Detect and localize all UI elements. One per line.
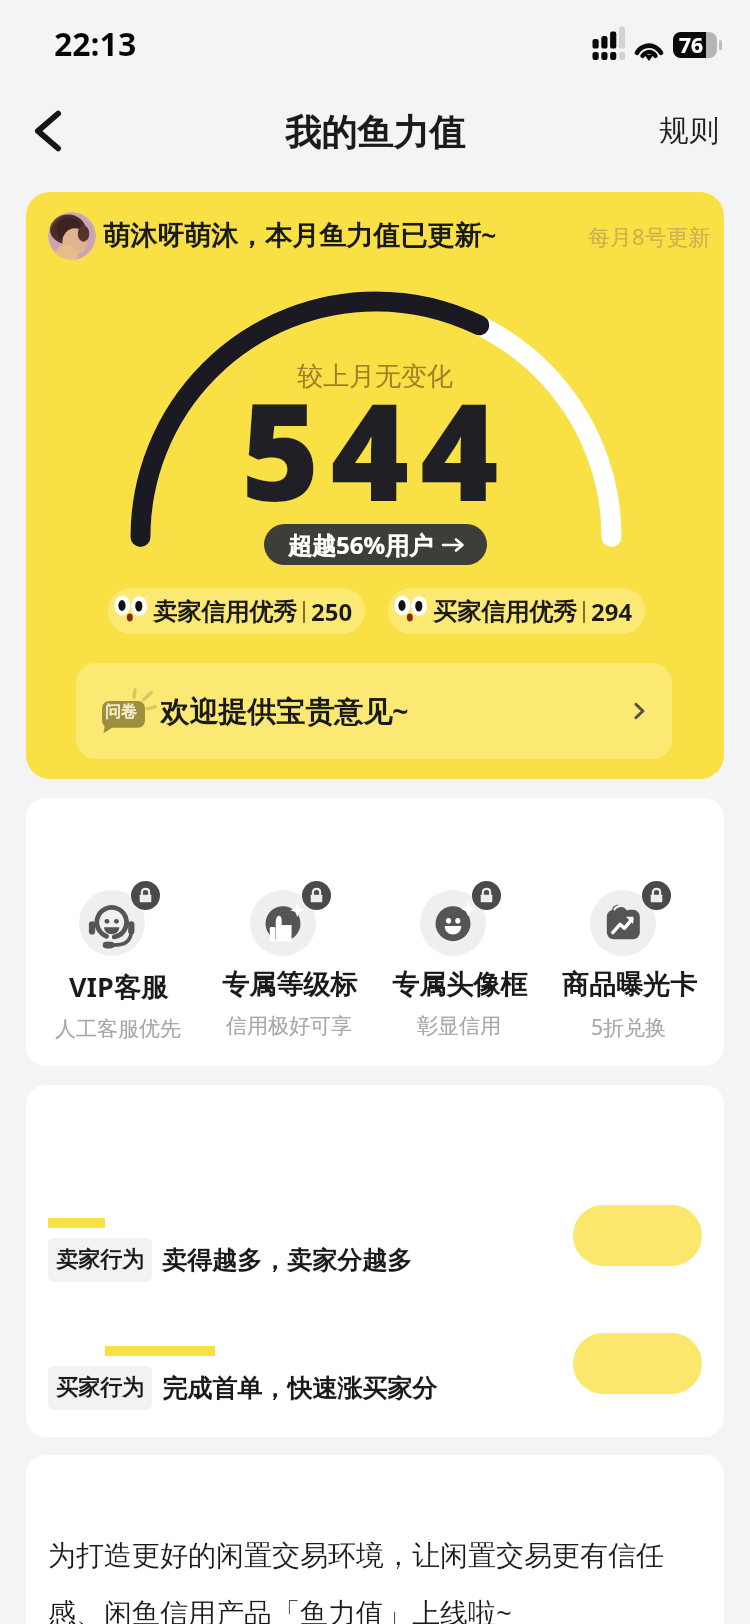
button[interactable]: 商品曝光卡 — [544, 880, 714, 1042]
staticText: 250 — [311, 595, 353, 628]
staticText: 完成首单，快速涨买家分 — [162, 1373, 437, 1404]
staticText: 商品曝光卡 — [562, 968, 697, 1002]
staticText: 我的鱼力值 — [285, 110, 465, 155]
staticText: VIP客服 — [69, 968, 168, 1005]
button[interactable]: Back — [20, 103, 76, 159]
staticText: 294 — [591, 595, 633, 628]
staticText: 544 — [241, 358, 510, 541]
staticText: 22:13 — [54, 22, 137, 66]
staticText: 为打造更好的闲置交易环境，让闲置交易更有信任感、闲鱼信用产品「鱼力值」上线啦~ — [48, 1538, 684, 1624]
staticText: 人工客服优先 — [55, 1016, 181, 1042]
staticText: 彰显信用 — [417, 1013, 501, 1039]
staticText: 较上月无变化 — [297, 360, 453, 393]
staticText: 5折兑换 — [591, 1013, 667, 1042]
staticText: 卖得越多，卖家分越多 — [162, 1245, 412, 1276]
button[interactable]: 卖家行为 — [26, 1200, 724, 1298]
staticText: 76 — [679, 32, 704, 57]
staticText: 超越56%用户 — [288, 528, 434, 561]
staticText: 专属等级标 — [222, 968, 357, 1002]
staticText: 规则 — [659, 112, 719, 150]
button[interactable]: 专属等级标 — [204, 880, 374, 1039]
staticText: 买家信用优秀 — [433, 597, 577, 627]
button[interactable]: 规则 — [659, 112, 719, 150]
button[interactable]: VIP客服 — [33, 880, 203, 1042]
staticText: 卖家行为 — [56, 1246, 144, 1274]
staticText: 卖家信用优秀 — [153, 597, 297, 627]
button[interactable]: 卖家信用优秀 — [108, 588, 365, 634]
button[interactable]: 专属头像框 — [374, 880, 544, 1039]
button[interactable]: 买家行为 — [26, 1328, 724, 1426]
staticText: 专属头像框 — [392, 968, 527, 1002]
staticText: 每月8号更新 — [588, 221, 711, 251]
staticText: 买家行为 — [56, 1374, 144, 1402]
staticText: 欢迎提供宝贵意见~ — [160, 691, 409, 731]
button[interactable]: 买家信用优秀 — [388, 588, 645, 634]
button[interactable]: 问卷 — [76, 663, 672, 759]
staticText: 萌沐呀萌沐，本月鱼力值已更新~ — [103, 216, 497, 253]
button[interactable]: 超越56%用户 — [264, 524, 487, 565]
staticText: 信用极好可享 — [226, 1013, 352, 1039]
staticText: 问卷 — [105, 702, 137, 722]
